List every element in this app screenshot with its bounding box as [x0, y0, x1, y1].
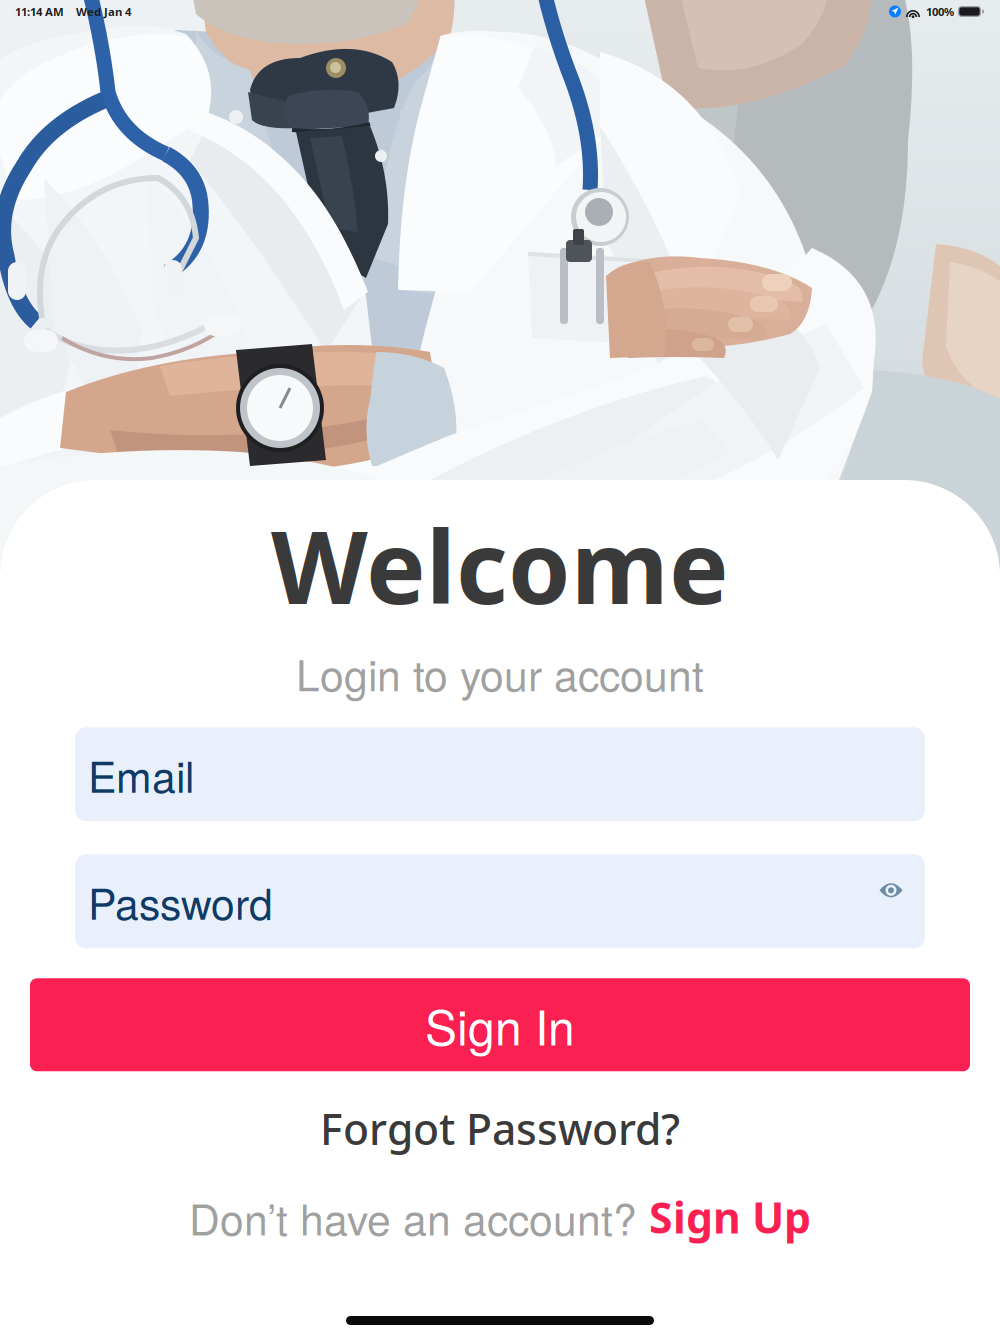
staticText: 11:14 AM: [15, 4, 64, 19]
staticText: Email: [88, 744, 194, 805]
staticText: Password: [88, 871, 273, 932]
staticText: 100%: [926, 4, 954, 19]
staticText: Login to your account: [296, 642, 704, 703]
button[interactable]: Don’t have an account?: [30, 1178, 970, 1255]
staticText: Sign Up: [649, 1188, 811, 1246]
button[interactable]: Sign In: [30, 978, 970, 1071]
staticText: Welcome: [271, 497, 729, 633]
staticText: Don’t have an account?: [189, 1186, 649, 1247]
staticText: Forgot Password?: [320, 1099, 680, 1157]
staticText: Wed Jan 4: [76, 4, 131, 19]
button[interactable]: Email: [75, 727, 925, 821]
staticText: Sign In: [425, 990, 575, 1059]
button[interactable]: Forgot Password?: [30, 1091, 970, 1165]
button[interactable]: Password: [75, 854, 925, 948]
